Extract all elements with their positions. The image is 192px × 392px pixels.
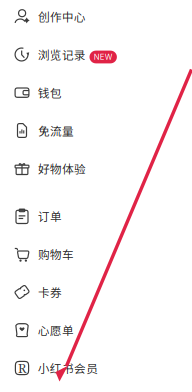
button[interactable]: 钱包	[0, 73, 192, 111]
staticText: 好物体验	[38, 160, 86, 177]
staticText: 免流量	[38, 122, 74, 139]
button[interactable]: 购物车	[0, 235, 192, 273]
staticText: 小红书会员	[38, 360, 98, 376]
staticText: 心愿单	[38, 322, 74, 338]
button[interactable]: 浏览记录	[0, 35, 192, 73]
button[interactable]: 心愿单	[0, 311, 192, 349]
staticText: 钱包	[38, 84, 62, 101]
staticText: 购物车	[38, 246, 74, 262]
button[interactable]: 免流量	[0, 111, 192, 149]
staticText: R	[18, 359, 26, 377]
staticText: 浏览记录	[38, 46, 86, 63]
button[interactable]: 订单	[0, 197, 192, 235]
staticText: 订单	[38, 208, 62, 224]
staticText: 创作中心	[38, 8, 86, 25]
button[interactable]: 卡券	[0, 273, 192, 311]
staticText: 卡券	[38, 284, 62, 300]
button[interactable]: 好物体验	[0, 149, 192, 187]
button[interactable]: R	[0, 349, 192, 387]
button[interactable]: 创作中心	[0, 0, 192, 35]
staticText: NEW	[94, 52, 113, 62]
